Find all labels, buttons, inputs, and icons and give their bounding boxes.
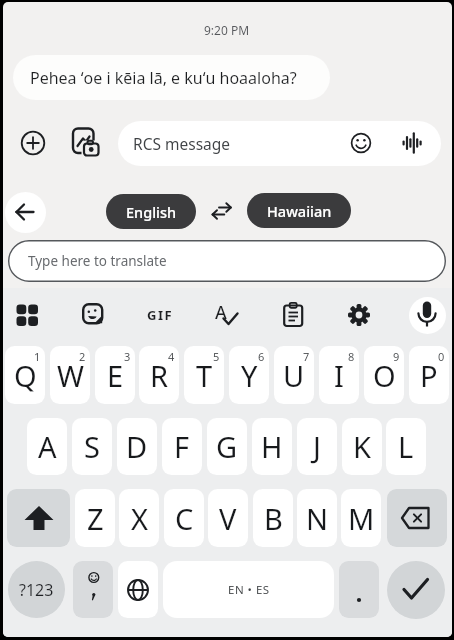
staticText: 4 bbox=[168, 349, 175, 364]
button[interactable] bbox=[400, 130, 424, 156]
staticText: English bbox=[126, 202, 177, 222]
staticText: X bbox=[131, 499, 148, 538]
button[interactable]: W bbox=[50, 346, 90, 404]
button[interactable] bbox=[71, 126, 101, 158]
button[interactable]: Q bbox=[5, 346, 45, 404]
staticText: I bbox=[334, 356, 344, 395]
button[interactable]: GIF bbox=[140, 303, 180, 327]
button[interactable]: English bbox=[106, 194, 196, 229]
button[interactable] bbox=[5, 192, 46, 233]
staticText: C bbox=[175, 499, 194, 538]
staticText: ?123 bbox=[19, 579, 54, 601]
staticText: U bbox=[283, 356, 305, 395]
staticText: S bbox=[84, 427, 100, 466]
staticText: D bbox=[126, 427, 148, 466]
staticText: 0 bbox=[438, 349, 445, 364]
staticText: V bbox=[219, 499, 237, 538]
staticText: B bbox=[264, 499, 283, 538]
staticText: GIF bbox=[147, 306, 174, 324]
button[interactable]: L bbox=[386, 418, 426, 475]
button[interactable]: K bbox=[342, 418, 382, 475]
button[interactable]: EN • ES bbox=[163, 561, 334, 618]
button[interactable]: G bbox=[207, 418, 247, 475]
staticText: 6 bbox=[258, 349, 265, 364]
staticText: 9:20 PM bbox=[204, 22, 250, 38]
button[interactable]: I bbox=[319, 346, 359, 404]
staticText: Q bbox=[14, 356, 37, 395]
button[interactable]: P bbox=[409, 346, 449, 404]
staticText: 2 bbox=[79, 349, 86, 364]
staticText: 3 bbox=[124, 349, 131, 364]
button[interactable]: O bbox=[364, 346, 404, 404]
staticText: 8 bbox=[348, 349, 355, 364]
staticText: M bbox=[348, 499, 375, 538]
button[interactable]: A bbox=[27, 418, 67, 475]
staticText: J bbox=[313, 427, 321, 466]
staticText: 1 bbox=[34, 349, 41, 364]
staticText: L bbox=[398, 427, 414, 466]
staticText: F bbox=[174, 427, 190, 466]
button[interactable] bbox=[82, 303, 104, 327]
button[interactable]: M bbox=[341, 489, 381, 547]
staticText: 5 bbox=[213, 349, 220, 364]
button[interactable] bbox=[73, 561, 113, 618]
button[interactable]: Y bbox=[229, 346, 269, 404]
button[interactable] bbox=[387, 561, 445, 619]
button[interactable]: E bbox=[95, 346, 135, 404]
staticText: W bbox=[57, 356, 84, 395]
staticText: H bbox=[261, 427, 283, 466]
button[interactable]: F bbox=[162, 418, 202, 475]
button[interactable]: V bbox=[208, 489, 248, 547]
staticText: G bbox=[216, 427, 238, 466]
staticText: T bbox=[196, 356, 213, 395]
button[interactable] bbox=[350, 132, 372, 154]
button[interactable]: ?123 bbox=[8, 561, 65, 618]
button[interactable]: A bbox=[212, 300, 244, 330]
staticText: RCS message bbox=[133, 133, 231, 154]
button[interactable]: RCS message bbox=[118, 121, 441, 166]
staticText: EN • ES bbox=[228, 582, 270, 598]
staticText: Pehea ʻoe i kēia lā, e kuʻu hoaaloha? bbox=[30, 67, 297, 89]
button[interactable] bbox=[8, 240, 446, 282]
button[interactable] bbox=[283, 302, 305, 328]
button[interactable] bbox=[7, 489, 70, 547]
button[interactable]: H bbox=[252, 418, 292, 475]
button[interactable]: B bbox=[253, 489, 293, 547]
button[interactable]: U bbox=[274, 346, 314, 404]
button[interactable]: S bbox=[72, 418, 112, 475]
button[interactable]: N bbox=[297, 489, 337, 547]
button[interactable]: X bbox=[119, 489, 159, 547]
staticText: 9 bbox=[393, 349, 400, 364]
staticText: N bbox=[306, 499, 329, 538]
button[interactable]: T bbox=[184, 346, 224, 404]
staticText: A bbox=[38, 427, 57, 466]
button[interactable] bbox=[339, 561, 379, 618]
button[interactable] bbox=[20, 130, 46, 156]
staticText: O bbox=[373, 356, 396, 395]
staticText: Y bbox=[241, 356, 258, 395]
button[interactable]: Pehea ʻoe i kēia lā, e kuʻu hoaaloha? bbox=[13, 55, 330, 100]
staticText: Hawaiian bbox=[267, 201, 332, 221]
button[interactable]: C bbox=[164, 489, 204, 547]
button[interactable]: J bbox=[297, 418, 337, 475]
button[interactable] bbox=[387, 489, 447, 547]
staticText: Z bbox=[87, 499, 104, 538]
staticText: Type here to translate bbox=[28, 252, 167, 270]
button[interactable]: R bbox=[139, 346, 179, 404]
button[interactable]: D bbox=[117, 418, 157, 475]
button[interactable]: Hawaiian bbox=[247, 193, 351, 228]
staticText: P bbox=[420, 356, 438, 395]
button[interactable] bbox=[118, 561, 158, 618]
button[interactable] bbox=[409, 297, 446, 334]
button[interactable] bbox=[348, 303, 370, 327]
staticText: 7 bbox=[303, 349, 310, 364]
button[interactable] bbox=[16, 303, 39, 327]
button[interactable] bbox=[209, 199, 235, 223]
button[interactable]: Z bbox=[75, 489, 115, 547]
staticText: E bbox=[107, 356, 124, 395]
staticText: R bbox=[150, 356, 169, 395]
staticText: A bbox=[215, 300, 227, 325]
staticText: K bbox=[353, 427, 371, 466]
